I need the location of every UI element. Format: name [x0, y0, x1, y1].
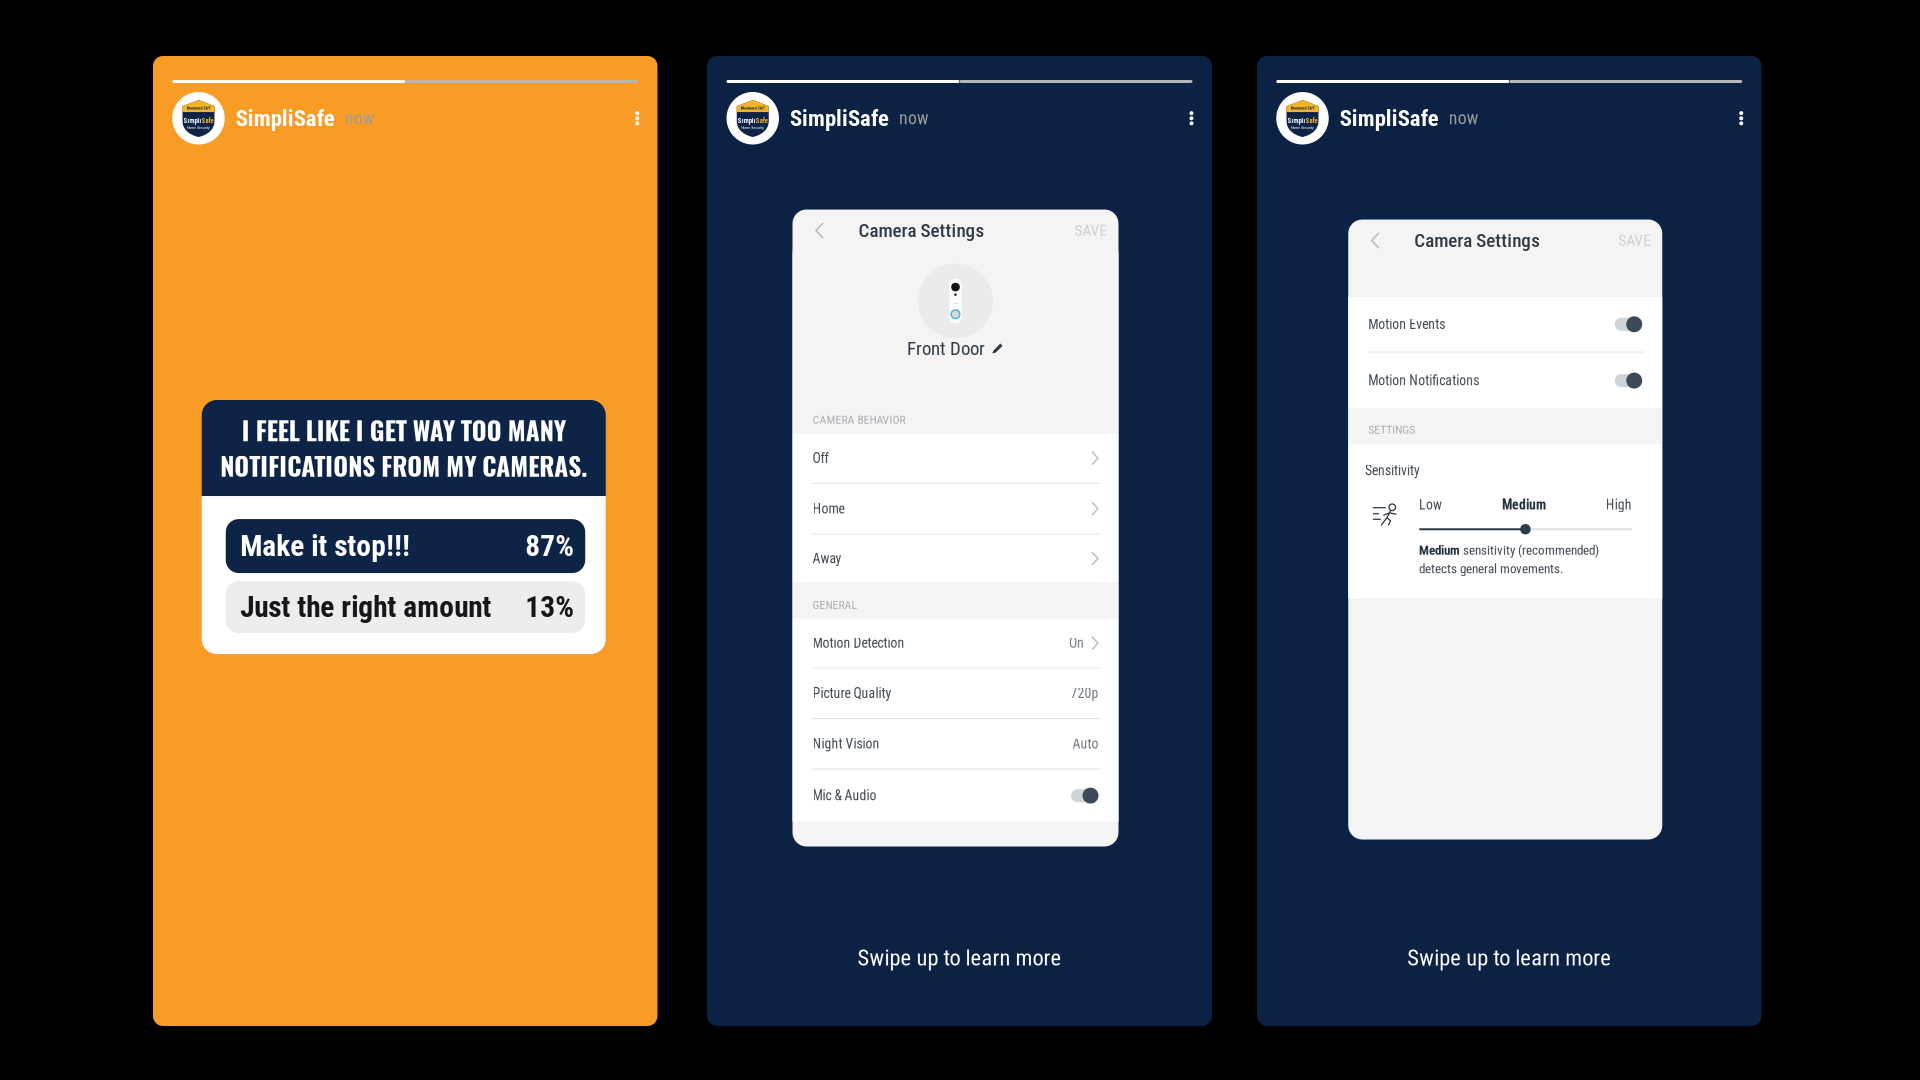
button[interactable]: Mic & Audio [792, 770, 1118, 821]
staticText: SimpliSafe [790, 105, 889, 132]
staticText: now [1449, 108, 1479, 129]
staticText: Medium [1502, 497, 1546, 513]
staticText: Safe [1305, 117, 1317, 125]
staticText: Sensitivity [1365, 463, 1420, 479]
staticText: Simpli [183, 117, 201, 125]
button[interactable]: Picture Quality [792, 668, 1118, 719]
staticText: Safe [756, 117, 768, 125]
button[interactable]: Off [792, 433, 1118, 484]
staticText: now [345, 108, 375, 129]
button[interactable]: Just the right amount [226, 581, 585, 633]
staticText: Motion Detection [812, 635, 904, 651]
staticText: Monitored 24/7 [186, 106, 210, 111]
staticText: Motion Notifications [1368, 373, 1479, 389]
staticText: SAVE [1074, 221, 1107, 239]
button[interactable]: Night Vision [792, 719, 1118, 770]
staticText: Home Security [187, 125, 210, 130]
staticText: Simpli [738, 117, 756, 125]
staticText: NOTIFICATIONS FROM MY CAMERAS. [220, 446, 587, 484]
staticText: Medium [1419, 543, 1460, 558]
staticText: Just the right amount [240, 590, 491, 624]
staticText: sensitivity (recommended) [1460, 543, 1599, 558]
button[interactable]: More options [1184, 95, 1192, 141]
staticText: Auto [1072, 736, 1098, 752]
staticText: Night Vision [812, 736, 879, 752]
staticText: Swipe up to learn more [1407, 945, 1611, 971]
staticText: Off [812, 450, 828, 466]
staticText: Away [812, 550, 841, 567]
button[interactable]: Motion Detection [792, 619, 1118, 668]
staticText: 720p [1070, 685, 1098, 701]
button[interactable]: Home [792, 484, 1118, 535]
staticText: GENERAL [812, 598, 857, 612]
staticText: Swipe up to learn more [857, 945, 1061, 971]
staticText: Motion Events [1368, 316, 1445, 332]
staticText: 87% [525, 529, 574, 563]
staticText: Home [812, 501, 844, 517]
staticText: On [1069, 635, 1084, 651]
staticText: Home Security [741, 125, 764, 130]
staticText: SimpliSafe [1340, 105, 1439, 132]
staticText: SETTINGS [1368, 423, 1415, 437]
staticText: detects general movements. [1419, 561, 1563, 576]
staticText: High [1606, 497, 1632, 513]
staticText: CAMERA BEHAVIOR [812, 413, 905, 427]
staticText: Simpli [1287, 117, 1305, 125]
button[interactable]: Motion Events [1348, 297, 1662, 353]
staticText: Camera Settings [1414, 229, 1540, 252]
button[interactable]: Make it stop!!! [226, 519, 585, 573]
staticText: Picture Quality [812, 685, 891, 701]
staticText: Monitored 24/7 [1290, 106, 1314, 111]
staticText: Home Security [1291, 125, 1314, 130]
staticText: Monitored 24/7 [741, 106, 765, 111]
button[interactable]: More options [1734, 95, 1742, 141]
staticText: Camera Settings [858, 219, 984, 242]
staticText: Safe [201, 117, 213, 125]
button[interactable]: Away [792, 535, 1118, 582]
staticText: SAVE [1618, 231, 1651, 249]
button[interactable]: Back [809, 218, 829, 242]
staticText: Low [1419, 497, 1442, 513]
button[interactable]: Motion Notifications [1348, 353, 1662, 408]
staticText: Front Door [907, 337, 985, 359]
staticText: I FEEL LIKE I GET WAY TOO MANY [242, 411, 566, 448]
staticText: Make it stop!!! [240, 529, 410, 563]
button[interactable]: Back [1365, 228, 1385, 252]
staticText: now [899, 108, 929, 129]
button[interactable]: SAVE [1074, 221, 1107, 239]
staticText: SimpliSafe [236, 105, 335, 132]
staticText: 13% [525, 590, 574, 624]
button[interactable]: More options [630, 95, 638, 141]
button[interactable]: SAVE [1618, 231, 1651, 249]
staticText: Mic & Audio [812, 788, 876, 804]
